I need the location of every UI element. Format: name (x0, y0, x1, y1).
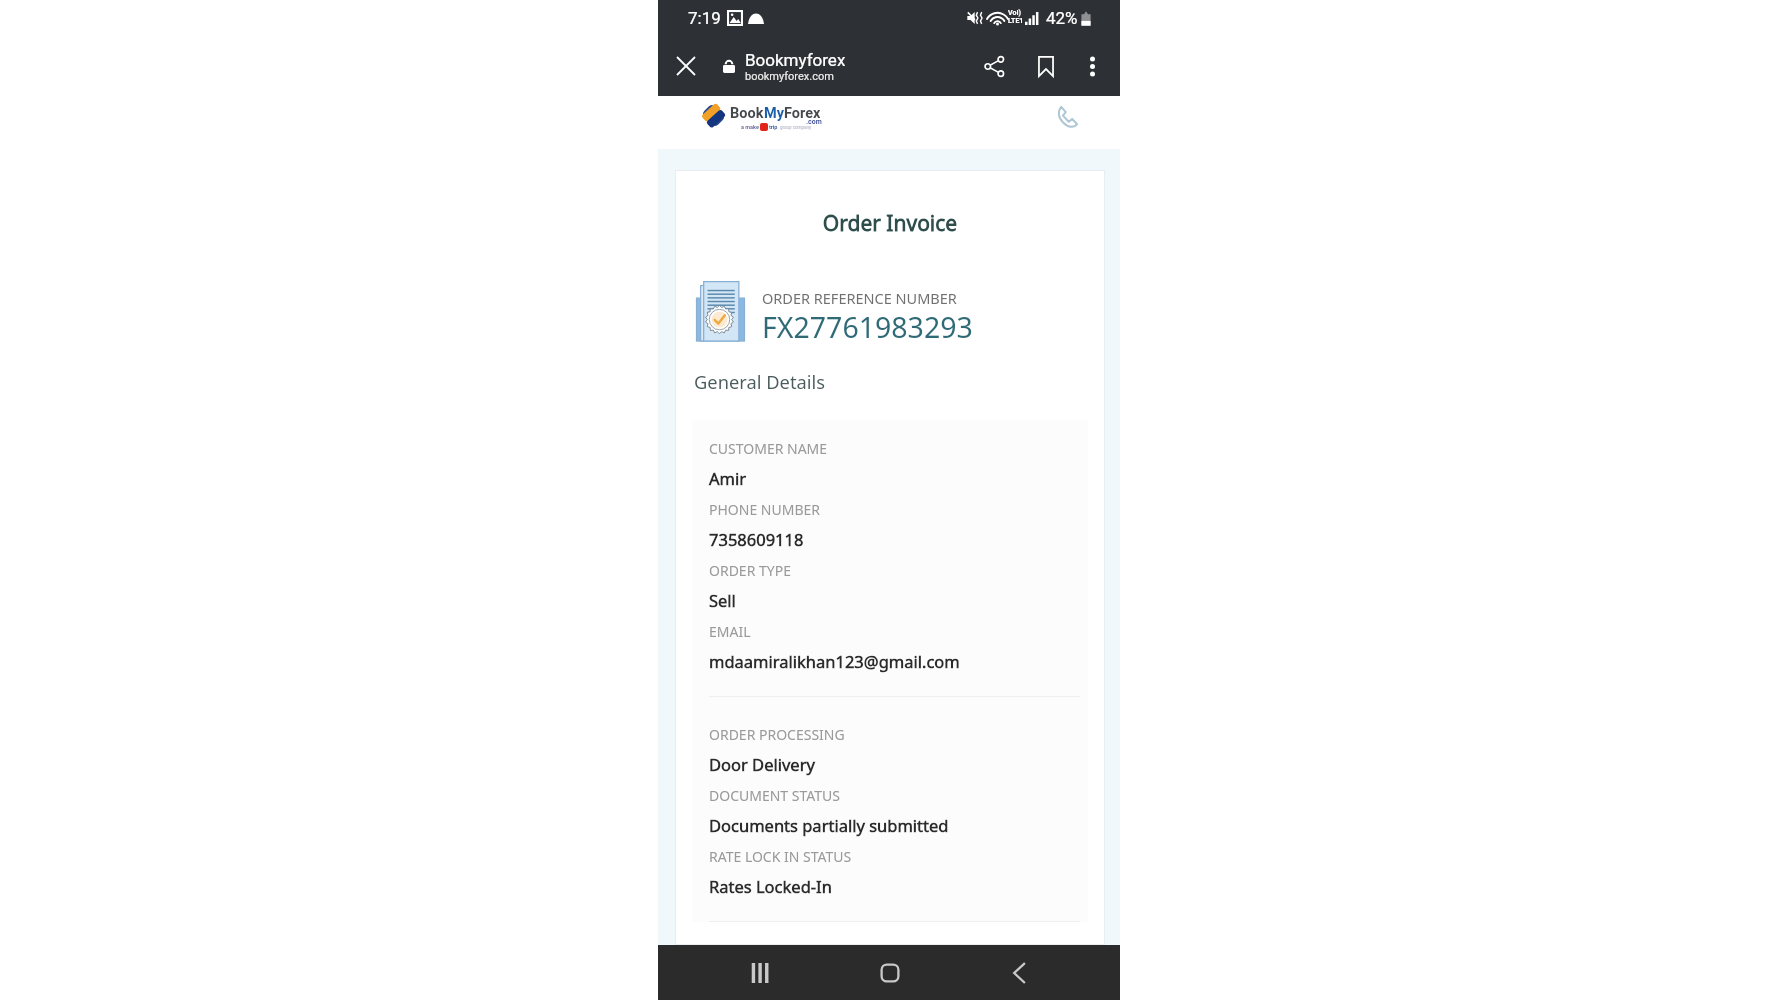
staticText: VoI) (1008, 9, 1021, 17)
staticText: 7:19 (688, 8, 721, 28)
staticText: mdaamiralikhan123@gmail.com (709, 650, 960, 672)
button[interactable]: Call (1052, 102, 1082, 132)
staticText: Documents partially submitted (709, 814, 949, 836)
staticText: Order Invoice (676, 209, 1104, 238)
staticText: .com (806, 118, 822, 126)
button[interactable]: Share (974, 46, 1014, 86)
staticText: General Details (694, 369, 825, 394)
staticText: My (764, 105, 784, 122)
staticText: EMAIL (709, 622, 751, 641)
staticText: 7358609118 (709, 528, 804, 550)
staticText: ORDER REFERENCE NUMBER (762, 288, 957, 308)
staticText: Forex (784, 105, 821, 122)
staticText: RATE LOCK IN STATUS (709, 847, 852, 866)
staticText: LTE1 (1008, 17, 1024, 25)
staticText: bookmyforex.com (745, 70, 834, 83)
staticText: PHONE NUMBER (709, 500, 821, 519)
staticText: a make (741, 124, 759, 130)
staticText: Door Delivery (709, 753, 815, 775)
staticText: 42% (1046, 8, 1078, 28)
staticText: Sell (709, 589, 736, 611)
staticText: Amir (709, 467, 747, 489)
staticText: group company (780, 125, 812, 130)
button[interactable]: Close (664, 44, 708, 88)
button[interactable]: Back (954, 945, 1083, 1000)
staticText: FX27761983293 (762, 308, 973, 347)
staticText: DOCUMENT STATUS (709, 786, 840, 805)
button[interactable]: Bookmark (1026, 46, 1066, 86)
staticText: ORDER PROCESSING (709, 725, 845, 744)
staticText: Rates Locked-In (709, 875, 832, 897)
staticText: trip (769, 124, 778, 130)
staticText: Bookmyforex (745, 50, 846, 70)
staticText: ORDER TYPE (709, 561, 791, 580)
button[interactable]: Home (825, 945, 954, 1000)
button[interactable]: More options (1072, 46, 1112, 86)
staticText: CUSTOMER NAME (709, 439, 828, 458)
staticText: Book (730, 105, 764, 122)
button[interactable]: Recents (695, 945, 825, 1000)
